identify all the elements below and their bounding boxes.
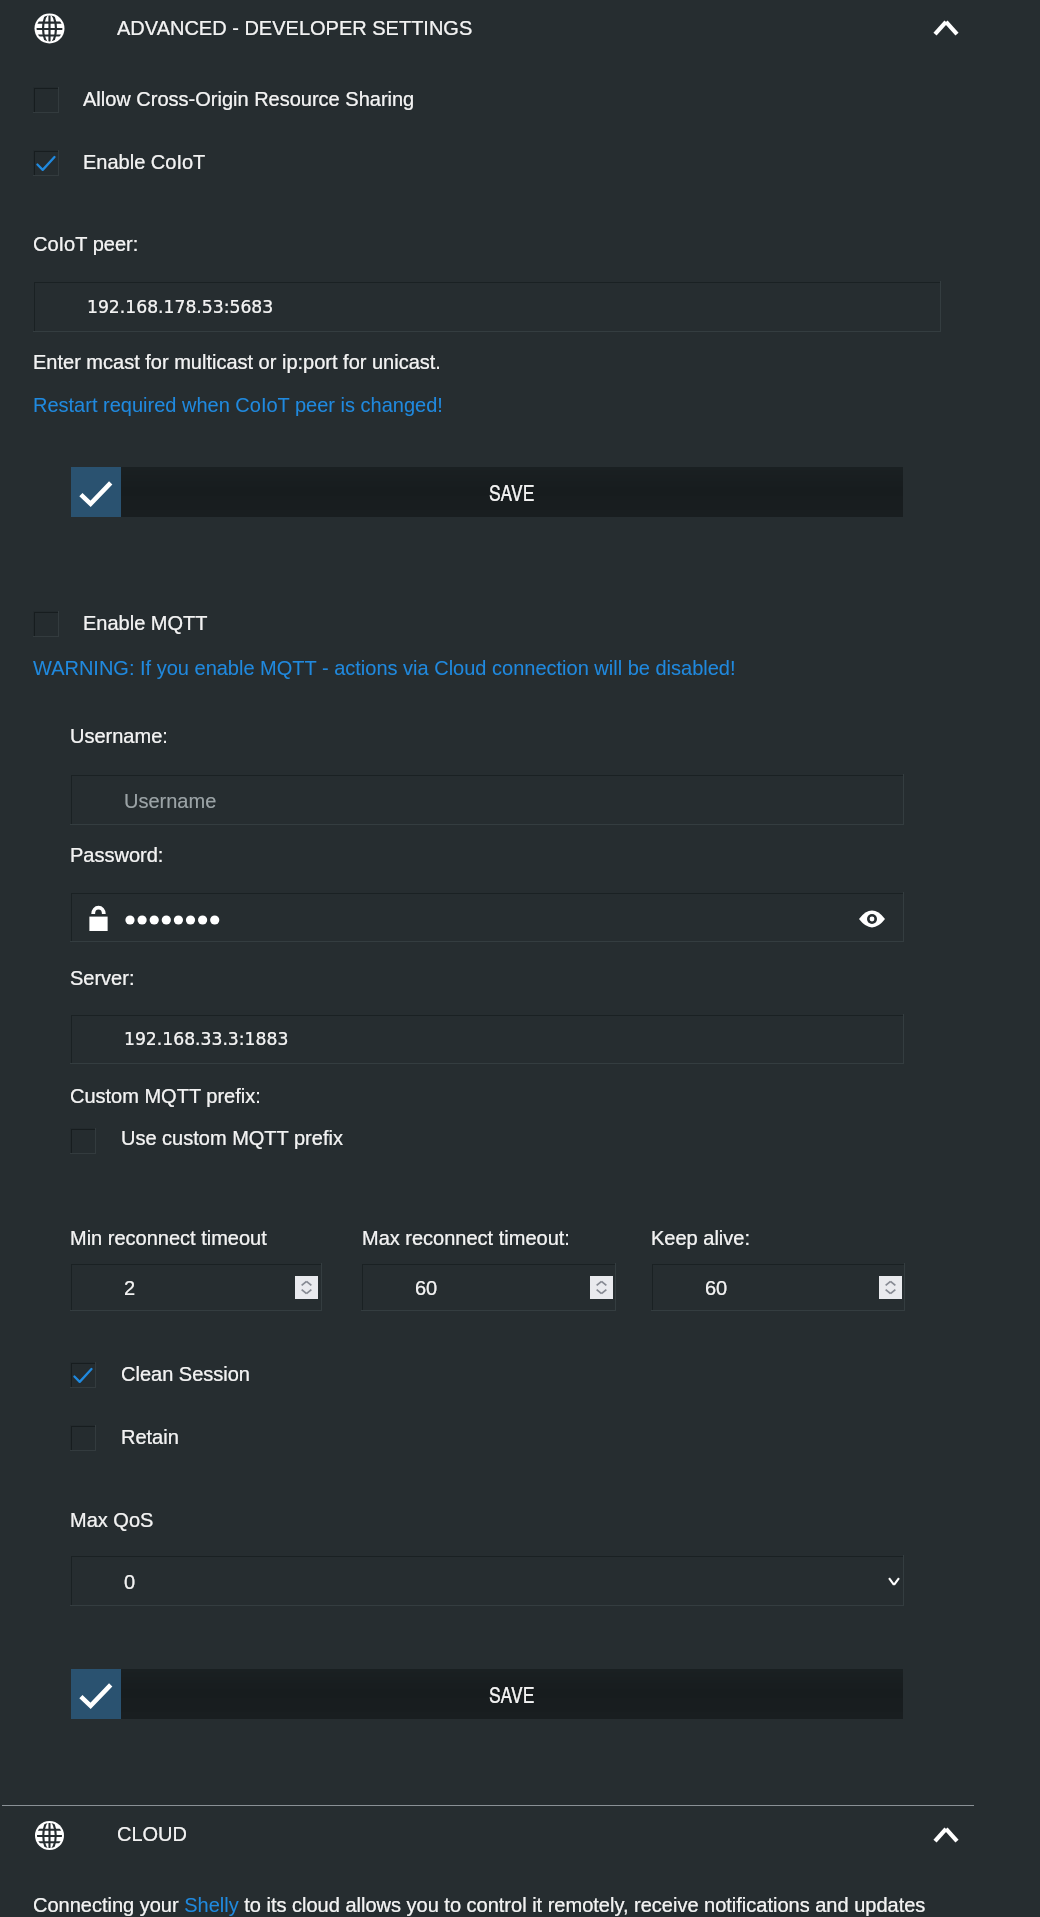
button[interactable] [70, 1126, 343, 1156]
staticText: Enable MQTT [83, 612, 208, 634]
staticText: Server: [70, 967, 135, 989]
button[interactable] [33, 609, 177, 639]
staticText: Restart required when CoIoT peer is chan… [33, 394, 443, 416]
staticText: CoIoT peer: [33, 233, 139, 255]
staticText: CLOUD [117, 1823, 188, 1845]
staticText: SAVE [489, 1680, 535, 1709]
staticText: Username [124, 790, 217, 812]
button[interactable]: Stepper [590, 1276, 613, 1299]
staticText: Password: [70, 844, 164, 866]
staticText: SAVE [489, 478, 535, 507]
button[interactable] [33, 85, 416, 115]
button[interactable]: SAVE [71, 467, 903, 517]
staticText: Max reconnect timeout: [362, 1227, 570, 1249]
staticText: Custom MQTT prefix: [70, 1085, 261, 1107]
button[interactable] [33, 148, 180, 178]
button[interactable]: Collapse section [918, 6, 974, 50]
button[interactable]: Show password [852, 901, 892, 937]
button[interactable]: Enable CoIoT [35, 152, 58, 175]
button[interactable] [0, 1810, 1040, 1865]
button[interactable]: Collapse cloud section [918, 1813, 974, 1857]
staticText: 192.168.33.3:1883 [124, 1029, 289, 1049]
staticText: 0 [124, 1571, 136, 1593]
staticText: 60 [705, 1277, 728, 1299]
staticText: Enable CoIoT [83, 151, 206, 173]
button[interactable] [70, 1360, 250, 1390]
staticText: Allow Cross-Origin Resource Sharing [83, 88, 415, 110]
staticText: ADVANCED - DEVELOPER SETTINGS [117, 17, 473, 39]
button[interactable] [70, 1423, 185, 1453]
staticText: Enter mcast for multicast or ip:port for… [33, 351, 441, 373]
staticText: Min reconnect timeout [70, 1227, 267, 1249]
button[interactable]: SAVE [71, 1669, 903, 1719]
staticText: Use custom MQTT prefix [121, 1127, 343, 1149]
staticText: Clean Session [121, 1363, 250, 1385]
staticText: Connecting your Shelly to its cloud allo… [33, 1894, 926, 1916]
staticText: 2 [124, 1277, 136, 1299]
staticText: Retain [121, 1426, 179, 1448]
button[interactable] [0, 0, 1040, 57]
staticText: 60 [415, 1277, 438, 1299]
staticText: WARNING: If you enable MQTT - actions vi… [33, 657, 736, 679]
staticText: Username: [70, 725, 168, 747]
staticText: Keep alive: [651, 1227, 750, 1249]
button[interactable]: Stepper [295, 1276, 318, 1299]
button[interactable]: Stepper [879, 1276, 902, 1299]
staticText: 192.168.178.53:5683 [87, 297, 274, 317]
button[interactable]: Clean Session [72, 1364, 95, 1387]
staticText: Max QoS [70, 1509, 154, 1531]
